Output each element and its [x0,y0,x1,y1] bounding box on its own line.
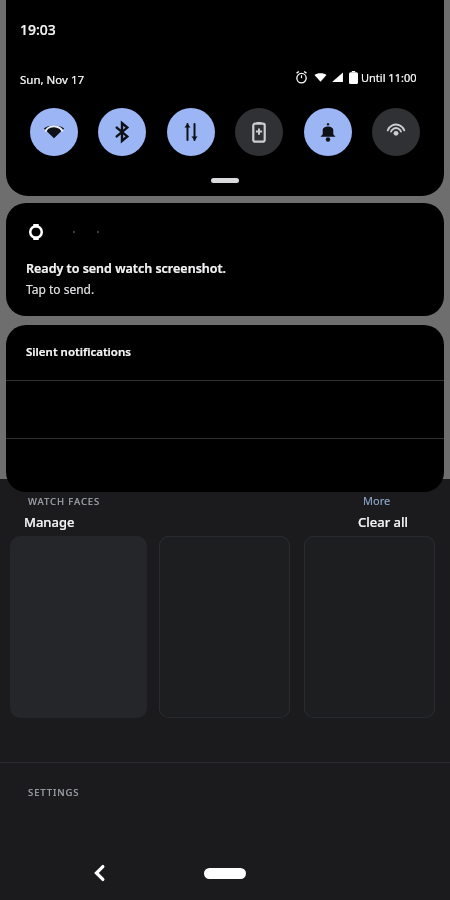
button[interactable]: Home [193,859,257,887]
button[interactable]: Wi-Fi [30,108,78,156]
button[interactable]: Expand quick settings [211,178,239,183]
button[interactable]: Mobile data [167,108,215,156]
staticText: WATCH FACES [28,495,101,508]
button[interactable] [6,380,444,438]
staticText: Sun, Nov 17 [20,72,85,88]
button[interactable]: Battery saver [235,108,283,156]
button[interactable] [6,438,444,492]
button[interactable]: Clear all [352,510,414,534]
staticText: More [363,493,391,508]
staticText: 19:03 [20,20,56,39]
staticText: Silent notifications [26,344,131,360]
staticText: Ready to send watch screenshot. [26,260,227,277]
button[interactable]: Hotspot [372,108,420,156]
staticText: Tap to send. [26,281,95,297]
staticText: Clear all [358,513,408,531]
staticText: Manage [24,513,75,531]
button[interactable]: Back [82,846,450,900]
button[interactable]: More [358,491,396,510]
staticText: Until 11:00 [361,70,417,85]
staticText: SETTINGS [28,786,80,799]
button[interactable]: Do not disturb [304,108,352,156]
button[interactable]: Ready to send watch screenshot. [6,203,444,316]
button[interactable]: Manage [18,510,81,534]
button[interactable]: Silent notifications [6,325,444,380]
button[interactable]: Bluetooth [98,108,146,156]
